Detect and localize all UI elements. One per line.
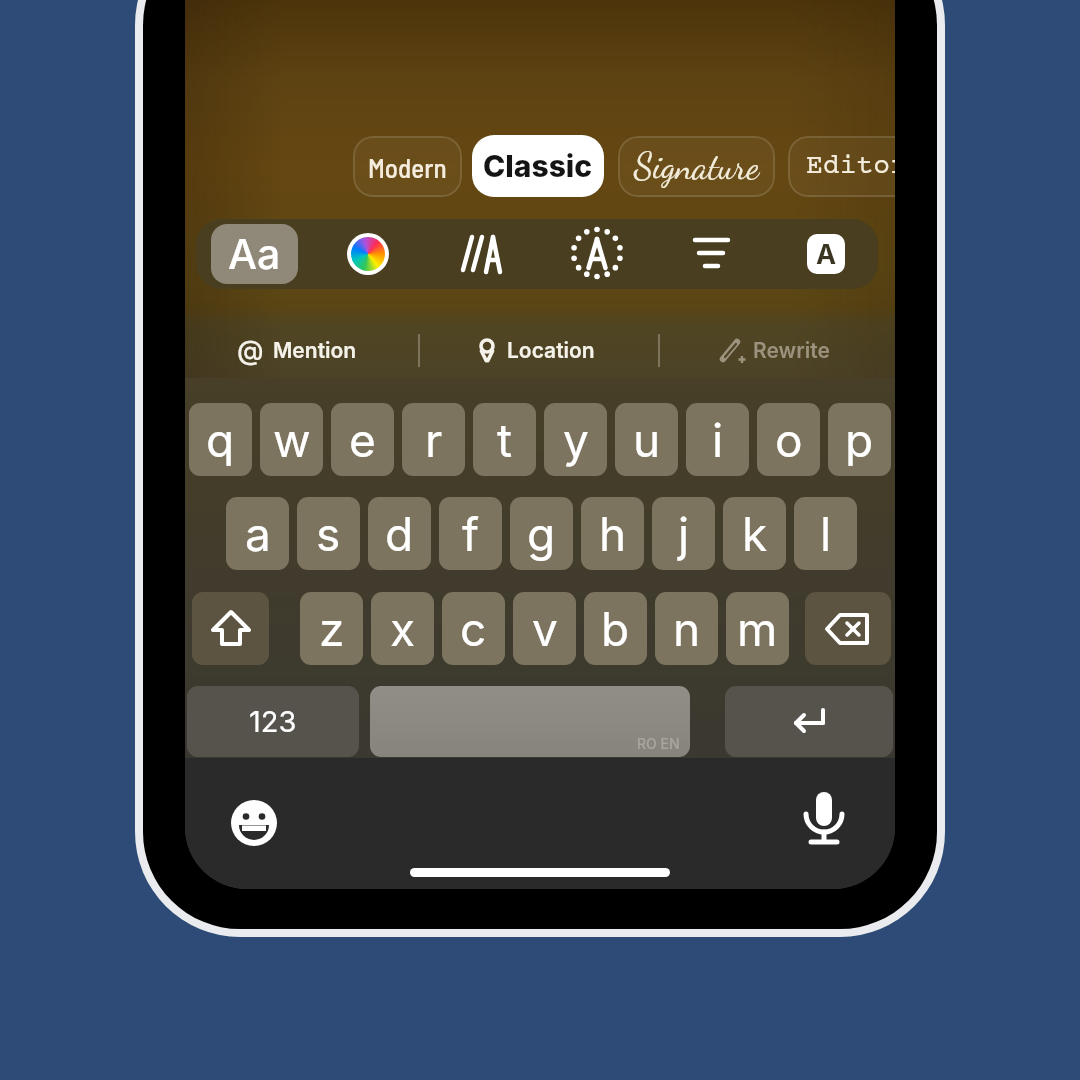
staticText: 123	[249, 704, 297, 739]
button[interactable]: r	[402, 403, 465, 476]
staticText: c	[460, 601, 487, 657]
staticText: v	[532, 601, 558, 657]
staticText: Location	[507, 338, 595, 363]
staticText: b	[601, 601, 630, 657]
button[interactable]: f	[439, 497, 502, 570]
button[interactable]: Signature	[618, 136, 775, 197]
button[interactable]: RO EN	[370, 686, 690, 757]
button[interactable]: Location	[475, 332, 595, 368]
button[interactable]: w	[260, 403, 323, 476]
button[interactable]: k	[723, 497, 786, 570]
button[interactable]: Editorial	[788, 136, 895, 197]
staticText: f	[462, 506, 480, 562]
button[interactable]: n	[655, 592, 718, 665]
button[interactable]	[192, 592, 269, 665]
staticText: p	[845, 412, 874, 468]
staticText: e	[349, 412, 376, 468]
button[interactable]: q	[189, 403, 252, 476]
button[interactable]: p	[828, 403, 891, 476]
staticText: RO EN	[637, 735, 680, 752]
staticText: Modern	[368, 151, 447, 183]
staticText: r	[425, 412, 443, 468]
staticText: a	[245, 506, 271, 562]
button[interactable]: x	[371, 592, 434, 665]
staticText: k	[742, 506, 768, 562]
button[interactable]: @	[237, 332, 357, 368]
staticText: t	[497, 412, 513, 468]
button[interactable]: Aa	[211, 224, 298, 284]
staticText: Aa	[228, 229, 281, 279]
button[interactable]: h	[581, 497, 644, 570]
button[interactable]	[692, 235, 732, 271]
staticText: Signature	[634, 145, 759, 188]
button[interactable]: u	[615, 403, 678, 476]
button[interactable]: a	[226, 497, 289, 570]
button[interactable]: A	[807, 234, 845, 274]
button[interactable]: Rewrite	[718, 332, 830, 368]
button[interactable]: Modern	[353, 136, 462, 197]
button[interactable]	[725, 686, 893, 757]
staticText: n	[673, 601, 701, 657]
staticText: Rewrite	[753, 338, 830, 363]
staticText: o	[775, 412, 803, 468]
staticText: h	[599, 506, 627, 562]
staticText: Mention	[273, 338, 357, 363]
button[interactable]: t	[473, 403, 536, 476]
staticText: @	[237, 334, 264, 367]
button[interactable]	[230, 799, 278, 847]
staticText: j	[678, 506, 690, 562]
button[interactable]: Classic	[472, 135, 604, 197]
button[interactable]: z	[300, 592, 363, 665]
staticText: Editorial	[806, 151, 895, 182]
staticText: m	[737, 601, 778, 657]
button[interactable]: g	[510, 497, 573, 570]
button[interactable]: l	[794, 497, 857, 570]
button[interactable]: o	[757, 403, 820, 476]
button[interactable]	[802, 790, 846, 850]
staticText: u	[633, 412, 661, 468]
staticText: A	[816, 238, 837, 271]
staticText: g	[527, 506, 556, 562]
button[interactable]	[460, 232, 504, 276]
staticText: i	[712, 412, 724, 468]
staticText: x	[390, 601, 416, 657]
button[interactable]: y	[544, 403, 607, 476]
staticText: d	[385, 506, 414, 562]
staticText: w	[273, 412, 311, 468]
button[interactable]: e	[331, 403, 394, 476]
staticText: l	[820, 506, 832, 562]
button[interactable]: d	[368, 497, 431, 570]
staticText: z	[319, 601, 345, 657]
staticText: s	[316, 506, 341, 562]
button[interactable]	[571, 227, 623, 279]
button[interactable]: b	[584, 592, 647, 665]
button[interactable]	[347, 233, 389, 275]
button[interactable]: m	[726, 592, 789, 665]
button[interactable]: s	[297, 497, 360, 570]
button[interactable]: c	[442, 592, 505, 665]
button[interactable]: i	[686, 403, 749, 476]
staticText: y	[563, 412, 589, 468]
button[interactable]	[805, 592, 891, 665]
staticText: q	[206, 412, 235, 468]
staticText: Classic	[483, 148, 593, 184]
button[interactable]: j	[652, 497, 715, 570]
button[interactable]: 123	[187, 686, 359, 757]
button[interactable]: v	[513, 592, 576, 665]
